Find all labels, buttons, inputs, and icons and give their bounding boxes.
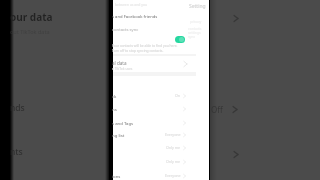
staticText: sync [188, 34, 196, 39]
staticText: our data [10, 10, 53, 24]
staticText: al data [112, 60, 127, 66]
staticText: nts [10, 146, 23, 158]
staticText: nds [10, 102, 25, 114]
staticText: out TikTok data [10, 28, 50, 35]
staticText: s and Tags [112, 120, 182, 126]
staticText: ions [112, 173, 164, 179]
button[interactable]: Only me [113, 157, 209, 166]
button[interactable]: ck [113, 91, 209, 100]
button[interactable]: ng list [113, 130, 209, 139]
staticText: ns [112, 106, 182, 112]
button[interactable]: Contacts sync toggle [175, 36, 185, 43]
staticText: Turn off to stop syncing contacts. [112, 48, 164, 52]
button[interactable]: our data [10, 0, 109, 180]
staticText: Only me [166, 159, 181, 164]
button[interactable]: Open item [233, 151, 239, 158]
button[interactable]: Open item [233, 15, 239, 22]
staticText: Everyone [165, 132, 181, 137]
button[interactable]: s and Tags [113, 118, 209, 127]
staticText: contacts sync [112, 27, 139, 33]
staticText: contacts [188, 26, 202, 31]
button[interactable]: Only me [113, 143, 209, 152]
button[interactable]: ns [113, 104, 209, 113]
staticText [112, 159, 165, 165]
staticText: ng list [112, 132, 164, 138]
staticText: Only me [166, 145, 181, 150]
staticText: Your contacts will be able to find you h… [112, 43, 178, 47]
staticText [112, 145, 165, 151]
staticText: ck [112, 93, 174, 99]
staticText: Off [211, 104, 223, 115]
staticText: Everyone [165, 173, 181, 178]
staticText: s and Facebook friends [112, 14, 158, 20]
staticText: On [175, 93, 181, 98]
button[interactable]: ions [113, 171, 209, 180]
staticText: settings [188, 30, 201, 35]
staticText: privacy [190, 19, 202, 24]
staticText: e TikTok uses [112, 66, 133, 70]
staticText: between us and you [115, 2, 148, 7]
button[interactable]: Off [211, 104, 238, 115]
staticText: Setting [189, 3, 206, 10]
